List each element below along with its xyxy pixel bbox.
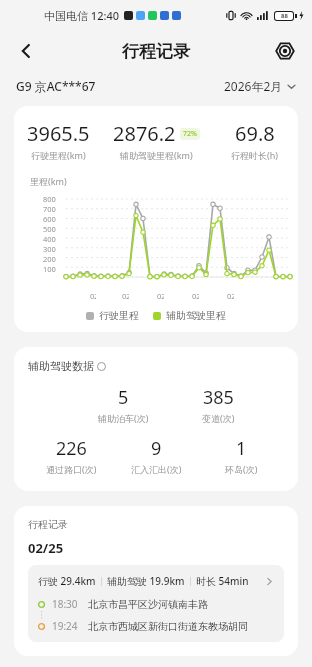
staticText: 02/05 (90, 291, 96, 301)
staticText: 02/20 (192, 291, 199, 301)
staticText: 02/25 (227, 291, 234, 301)
staticText: 辅助泊车(次) (98, 412, 149, 424)
staticText: 北京市西城区新街口街道东教场胡同 (88, 620, 248, 633)
staticText: 变道(次) (202, 412, 235, 424)
button[interactable]: 2026年2月 (224, 78, 296, 94)
staticText: 行程时长(h) (231, 149, 278, 161)
staticText: 200 (43, 254, 56, 264)
staticText: 2026年2月 (224, 78, 283, 94)
staticText: 辅助驾驶里程(km) (120, 149, 193, 161)
staticText: 700 (43, 204, 56, 214)
staticText: 72% (183, 129, 197, 139)
staticText: 226 (56, 436, 87, 461)
staticText: 中国电信 12:40 (44, 8, 120, 23)
staticText: 02/25 (28, 539, 64, 557)
staticText: 行程记录 (122, 41, 190, 62)
staticText: 辅助驾驶数据 (28, 359, 94, 373)
staticText: 800 (43, 194, 56, 204)
staticText: 9 (151, 436, 162, 461)
button[interactable]: Back (8, 33, 44, 69)
staticText: 88 (281, 12, 288, 20)
staticText: 通过路口(次) (46, 463, 97, 475)
staticText: 行程记录 (28, 518, 68, 531)
staticText: 时长 54min (196, 574, 249, 588)
staticText: 400 (43, 234, 56, 244)
staticText: 3965.5 (27, 120, 90, 147)
staticText: 北京市昌平区沙河镇南丰路 (88, 598, 208, 611)
staticText: 2876.2 (113, 120, 176, 147)
staticText: 600 (43, 214, 56, 224)
staticText: 300 (43, 244, 56, 254)
button[interactable]: Info (97, 362, 106, 371)
staticText: 02/10 (122, 291, 129, 301)
staticText: 1 (236, 436, 247, 461)
staticText: 02/15 (157, 291, 164, 301)
staticText: 行驶 29.4km (38, 574, 96, 588)
button[interactable]: Settings (268, 34, 302, 68)
staticText: 69.8 (235, 120, 275, 147)
staticText: 500 (43, 224, 56, 234)
staticText: 385 (203, 385, 234, 410)
staticText: 里程(km) (30, 175, 67, 187)
staticText: 行驶里程 (99, 309, 139, 322)
staticText: G9 京AC***67 (16, 78, 96, 94)
staticText: 18:30 (52, 597, 78, 611)
staticText: 辅助驾驶里程 (166, 309, 226, 322)
staticText: 100 (43, 264, 56, 274)
staticText: 5 (118, 385, 129, 410)
staticText: 辅助驾驶 19.9km (107, 574, 185, 588)
staticText: 行驶里程(km) (31, 149, 86, 161)
staticText: 汇入汇出(次) (131, 463, 182, 475)
button[interactable]: 行驶 29.4km (28, 565, 284, 642)
staticText: 19:24 (52, 619, 78, 633)
staticText: 环岛(次) (225, 463, 258, 475)
